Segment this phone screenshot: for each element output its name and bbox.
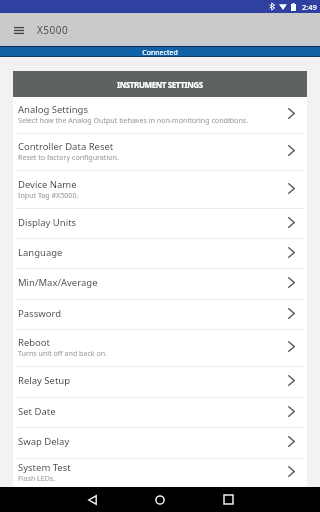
button[interactable]: System Test bbox=[13, 459, 307, 487]
button[interactable]: Language bbox=[13, 239, 307, 269]
staticText: Swap Delay bbox=[18, 435, 70, 448]
button[interactable]: Open navigation drawer bbox=[14, 21, 28, 37]
staticText: Password bbox=[18, 307, 61, 320]
button[interactable]: Back bbox=[70, 487, 115, 512]
staticText: Input Tag #X5000. bbox=[18, 190, 79, 200]
staticText: Controller Data Reset bbox=[18, 140, 114, 153]
button[interactable]: Controller Data Reset bbox=[13, 134, 307, 171]
staticText: Relay Setup bbox=[18, 374, 71, 387]
button[interactable]: Password bbox=[13, 300, 307, 330]
button[interactable]: Relay Setup bbox=[13, 367, 307, 398]
staticText: Connected bbox=[142, 48, 178, 57]
button[interactable]: Reboot bbox=[13, 330, 307, 367]
staticText: Display Units bbox=[18, 216, 77, 229]
staticText: Turns unit off and back on. bbox=[18, 348, 108, 358]
staticText: Language bbox=[18, 246, 63, 259]
staticText: Min/Max/Average bbox=[18, 276, 98, 289]
button[interactable]: Home bbox=[137, 487, 182, 512]
staticText: INSTRUMENT SETTINGS bbox=[117, 79, 203, 90]
button[interactable]: Analog Settings bbox=[13, 97, 307, 134]
staticText: 2:49 bbox=[302, 2, 317, 12]
staticText: Set Date bbox=[18, 405, 56, 418]
button[interactable]: Device Name bbox=[13, 171, 307, 209]
button[interactable]: Min/Max/Average bbox=[13, 269, 307, 300]
button[interactable]: Recent apps bbox=[206, 487, 251, 512]
staticText: Flash LEDs. bbox=[18, 473, 56, 483]
staticText: Reboot bbox=[18, 336, 51, 349]
button[interactable]: Set Date bbox=[13, 398, 307, 428]
staticText: Select how the Analog Output behaves in … bbox=[18, 115, 249, 125]
button[interactable]: Display Units bbox=[13, 209, 307, 239]
button[interactable]: Swap Delay bbox=[13, 428, 307, 459]
staticText: Analog Settings bbox=[18, 103, 88, 116]
staticText: Reset to factory configuration. bbox=[18, 152, 119, 162]
staticText: System Test bbox=[18, 461, 71, 474]
staticText: X5000 bbox=[37, 23, 69, 37]
staticText: Device Name bbox=[18, 178, 77, 191]
